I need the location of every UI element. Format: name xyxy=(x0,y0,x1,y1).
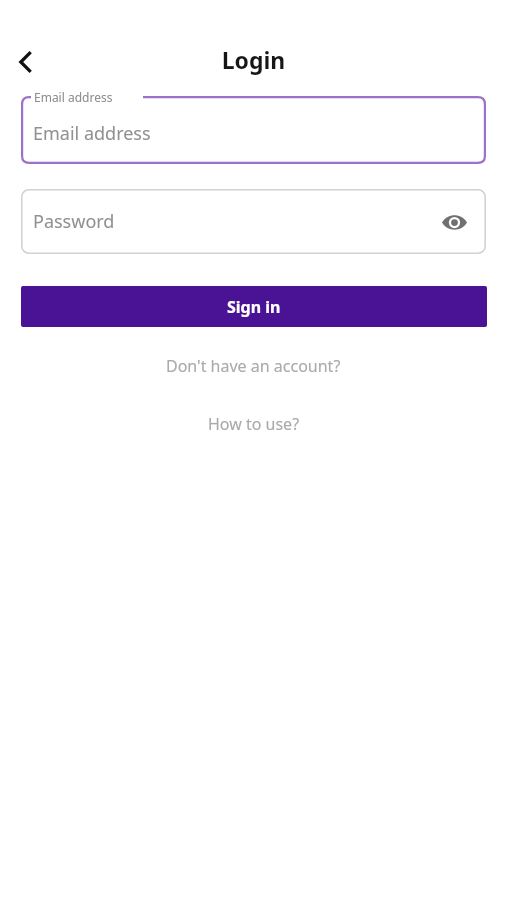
staticText: Email address xyxy=(33,121,151,146)
button[interactable]: Show password xyxy=(436,204,472,240)
button[interactable]: Don't have an account? xyxy=(0,350,507,382)
button[interactable]: Sign in xyxy=(21,286,487,327)
button[interactable]: How to use? xyxy=(0,408,507,440)
staticText: How to use? xyxy=(208,413,300,435)
staticText: Email address xyxy=(34,89,113,105)
button[interactable]: Email address xyxy=(21,96,486,164)
button[interactable]: Password xyxy=(21,189,486,254)
staticText: Sign in xyxy=(227,296,281,318)
staticText: Don't have an account? xyxy=(166,355,341,377)
button[interactable]: Back xyxy=(4,40,48,84)
staticText: Password xyxy=(33,209,115,234)
staticText: Login xyxy=(0,44,507,75)
